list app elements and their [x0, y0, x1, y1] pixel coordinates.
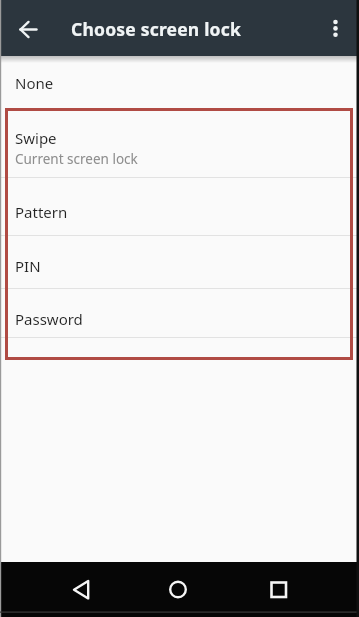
staticText: Current screen lock — [15, 150, 138, 168]
button[interactable] — [13, 14, 43, 44]
button[interactable] — [158, 569, 198, 609]
button[interactable]: Password — [0, 289, 359, 337]
button[interactable]: Swipe — [0, 109, 359, 177]
staticText: Swipe — [15, 128, 57, 148]
button[interactable]: Pattern — [0, 178, 359, 235]
button[interactable] — [321, 13, 351, 43]
button[interactable] — [61, 569, 101, 609]
staticText: Password — [15, 309, 83, 329]
button[interactable]: None — [0, 56, 359, 109]
staticText: Choose screen lock — [71, 17, 242, 41]
button[interactable] — [258, 569, 298, 609]
staticText: PIN — [15, 256, 41, 276]
staticText: Pattern — [15, 202, 68, 222]
staticText: None — [15, 73, 54, 93]
button[interactable]: PIN — [0, 236, 359, 288]
